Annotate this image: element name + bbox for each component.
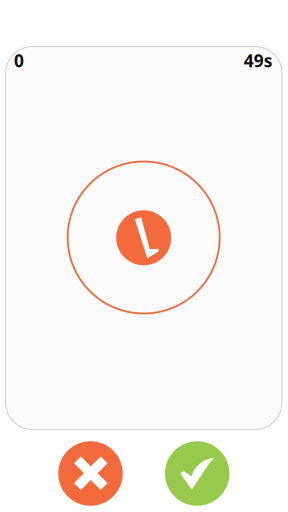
button[interactable]: Accept xyxy=(165,441,229,506)
button[interactable]: Reject xyxy=(58,441,123,506)
staticText: 0 xyxy=(14,49,24,72)
staticText: 49s xyxy=(244,49,273,72)
